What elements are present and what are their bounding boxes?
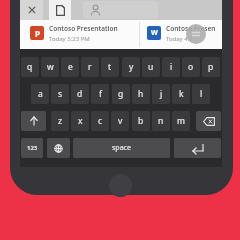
- button[interactable]: [47, 138, 70, 158]
- staticText: i: [170, 61, 173, 73]
- staticText: e: [68, 61, 73, 73]
- staticText: m: [177, 115, 185, 127]
- button[interactable]: [20, 0, 43, 20]
- staticText: t: [108, 61, 112, 73]
- staticText: P: [35, 28, 40, 39]
- staticText: d: [77, 88, 83, 100]
- button[interactable]: p: [202, 57, 220, 77]
- staticText: a: [38, 88, 43, 100]
- staticText: u: [148, 61, 154, 73]
- staticText: y: [129, 61, 134, 73]
- staticText: g: [118, 88, 124, 100]
- staticText: z: [58, 115, 62, 127]
- staticText: Contoso Presen: [166, 24, 216, 33]
- button[interactable]: k: [172, 84, 190, 104]
- staticText: l: [200, 88, 203, 100]
- button[interactable]: b: [132, 111, 150, 131]
- button[interactable]: z: [51, 111, 69, 131]
- button[interactable]: e: [61, 57, 79, 77]
- staticText: j: [160, 88, 163, 100]
- button[interactable]: l: [192, 84, 210, 104]
- staticText: Today 5:23 PM: [49, 35, 90, 43]
- button[interactable]: d: [71, 84, 89, 104]
- button[interactable]: f: [91, 84, 109, 104]
- staticText: c: [98, 115, 103, 127]
- staticText: f: [99, 88, 102, 100]
- button[interactable]: [21, 111, 46, 131]
- button[interactable]: x: [71, 111, 89, 131]
- button[interactable]: [196, 111, 221, 131]
- button[interactable]: h: [132, 84, 150, 104]
- staticText: W: [151, 28, 158, 38]
- staticText: p: [208, 61, 214, 73]
- staticText: w: [47, 61, 54, 73]
- button[interactable]: [83, 1, 158, 19]
- button[interactable]: r: [81, 57, 99, 77]
- button[interactable]: m: [172, 111, 190, 131]
- staticText: b: [138, 115, 144, 127]
- button[interactable]: n: [152, 111, 170, 131]
- button[interactable]: [109, 174, 132, 197]
- staticText: Today 4:5: [166, 35, 193, 43]
- button[interactable]: 123: [21, 138, 43, 158]
- staticText: o: [188, 61, 194, 73]
- button[interactable]: t: [101, 57, 119, 77]
- button[interactable]: c: [91, 111, 109, 131]
- button[interactable]: j: [152, 84, 170, 104]
- staticText: r: [88, 61, 92, 73]
- button[interactable]: a: [31, 84, 49, 104]
- button[interactable]: [174, 138, 221, 158]
- staticText: x: [78, 115, 83, 127]
- button[interactable]: s: [51, 84, 69, 104]
- staticText: q: [27, 61, 33, 73]
- button[interactable]: v: [111, 111, 129, 131]
- staticText: v: [118, 115, 123, 127]
- staticText: s: [58, 88, 63, 100]
- button[interactable]: g: [112, 84, 130, 104]
- button[interactable]: u: [142, 57, 160, 77]
- button[interactable]: y: [122, 57, 140, 77]
- staticText: space: [112, 143, 131, 153]
- staticText: n: [158, 115, 164, 127]
- button[interactable]: w: [41, 57, 59, 77]
- button[interactable]: i: [162, 57, 180, 77]
- staticText: Contoso Presentation: [49, 24, 118, 33]
- button[interactable]: o: [182, 57, 200, 77]
- staticText: h: [138, 88, 144, 100]
- button[interactable]: [49, 0, 71, 20]
- button[interactable]: space: [73, 138, 170, 158]
- button[interactable]: q: [21, 57, 39, 77]
- staticText: 123: [27, 144, 38, 152]
- staticText: k: [179, 88, 184, 100]
